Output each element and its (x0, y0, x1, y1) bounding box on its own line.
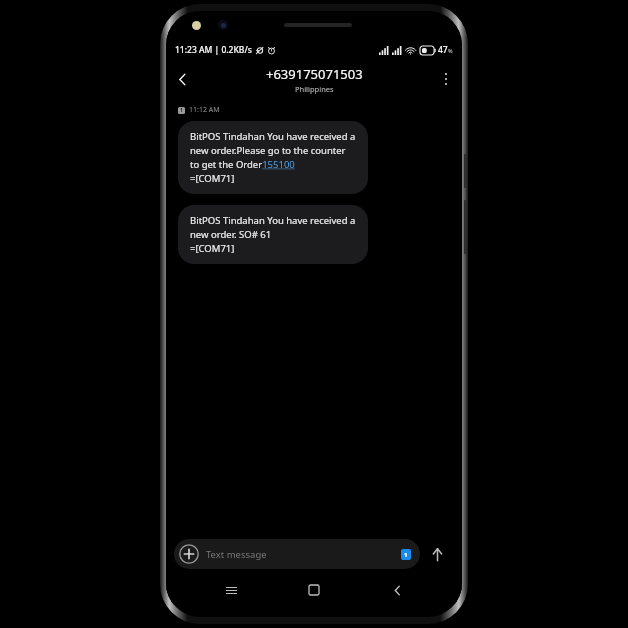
staticText: BitPOS Tindahan You have received a new … (190, 130, 356, 185)
button[interactable]: Home (296, 575, 332, 605)
button[interactable]: +639175071503 (266, 65, 363, 94)
button[interactable]: Add attachment (174, 539, 420, 569)
staticText: 11:23 AM | 0.2KB/s (175, 44, 252, 56)
staticText: 47 (438, 44, 448, 56)
button[interactable]: Recent apps (213, 575, 249, 605)
button[interactable]: Send (420, 537, 454, 571)
staticText: Text message (206, 548, 267, 561)
button[interactable]: SIM 1 (401, 549, 411, 560)
button[interactable]: Back (166, 63, 198, 95)
staticText: Philippines (295, 84, 334, 94)
button[interactable]: Back (379, 575, 415, 605)
button[interactable]: BitPOS Tindahan You have received a new … (178, 205, 368, 264)
staticText: % (448, 47, 453, 54)
button[interactable]: Add attachment (177, 542, 201, 566)
staticText: 1 (180, 107, 183, 114)
staticText: BitPOS Tindahan You have received a new … (190, 214, 356, 255)
staticText: 1 (404, 551, 408, 559)
staticText: +639175071503 (266, 65, 363, 83)
button[interactable]: BitPOS Tindahan You have received a new … (178, 121, 368, 194)
button[interactable]: More options (430, 63, 462, 95)
staticText: 11:12 AM (189, 105, 220, 115)
